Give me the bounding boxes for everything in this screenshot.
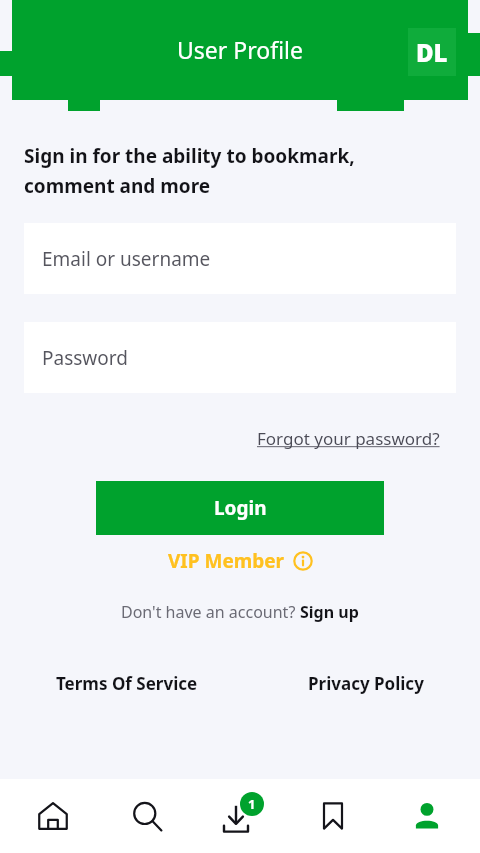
button[interactable]: Sign up — [300, 601, 359, 623]
button[interactable]: Bookmarks — [293, 779, 373, 853]
button[interactable]: Profile — [387, 779, 467, 853]
button[interactable]: Email or username — [24, 223, 456, 294]
staticText: Sign up — [300, 601, 359, 623]
staticText: DL — [416, 36, 448, 69]
button[interactable]: Downloads — [200, 779, 280, 853]
staticText: VIP Member — [168, 548, 285, 574]
button[interactable]: Home — [13, 779, 93, 853]
staticText: Sign in for the ability to bookmark, com… — [24, 143, 355, 198]
button[interactable]: Privacy Policy — [304, 668, 428, 699]
staticText: Password — [42, 345, 128, 371]
button[interactable]: Search — [107, 779, 187, 853]
staticText: User Profile — [177, 34, 303, 65]
button[interactable]: Forgot your password? — [253, 423, 444, 454]
staticText: Privacy Policy — [308, 672, 424, 695]
button[interactable]: VIP Member — [0, 544, 480, 578]
button[interactable]: DL logo — [408, 28, 456, 76]
button[interactable]: Terms Of Service — [52, 668, 202, 699]
staticText: Email or username — [42, 246, 211, 272]
button[interactable]: Login — [96, 481, 384, 535]
button[interactable]: Password — [24, 322, 456, 393]
staticText: Terms Of Service — [56, 672, 198, 695]
staticText: Login — [214, 495, 267, 521]
staticText: Don't have an account? — [121, 601, 300, 623]
staticText: Forgot your password? — [257, 427, 440, 450]
staticText: 1 — [248, 795, 256, 813]
